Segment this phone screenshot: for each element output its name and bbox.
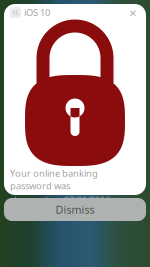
staticText: Dismiss: [55, 202, 94, 217]
button[interactable]: Dismiss: [4, 198, 146, 221]
button[interactable]: iOS 10: [10, 6, 50, 19]
staticText: iOS 10: [24, 6, 50, 19]
staticText: ×: [129, 4, 137, 21]
button[interactable]: Close: [126, 5, 140, 19]
staticText: changed on 07/01/2016 at 8:43AM.: [10, 194, 120, 219]
staticText: Your online banking password was: [10, 167, 98, 192]
